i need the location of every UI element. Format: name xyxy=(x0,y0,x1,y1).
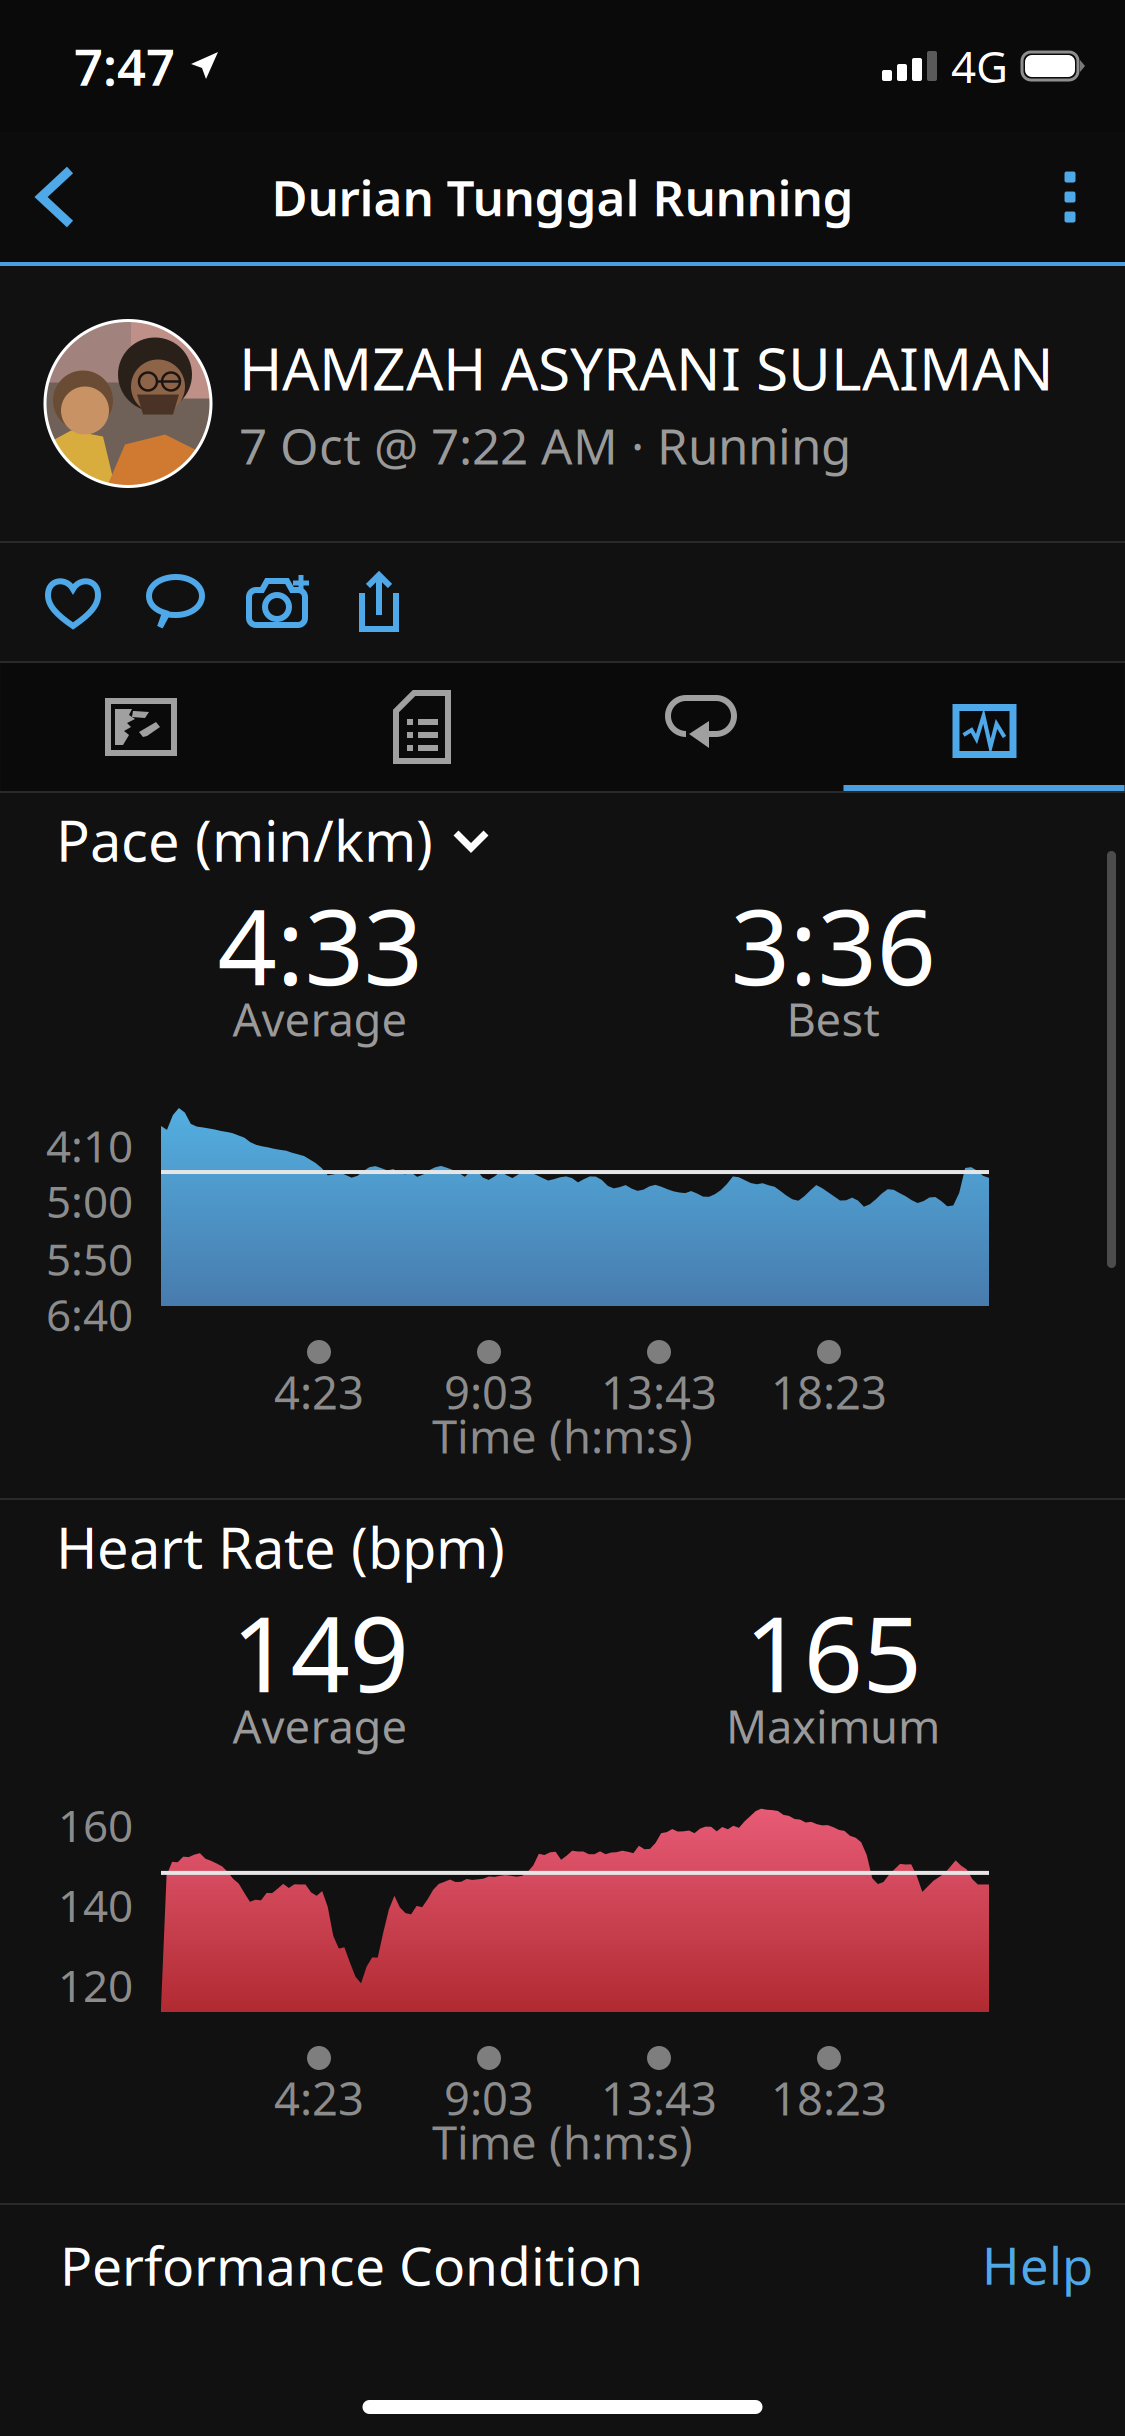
staticText: 149 xyxy=(231,1583,408,1721)
staticText: 13:43 xyxy=(601,1362,717,1422)
button[interactable]: Add photo xyxy=(226,552,328,652)
staticText: 18:23 xyxy=(771,2068,887,2128)
button[interactable]: Charts xyxy=(843,663,1124,791)
staticText: 5:50 xyxy=(46,1229,133,1288)
staticText: Durian Tunggal Running xyxy=(271,164,853,230)
staticText: Best xyxy=(786,989,879,1049)
staticText: 13:43 xyxy=(601,2068,717,2128)
button[interactable]: Details xyxy=(281,663,562,791)
button[interactable]: Share xyxy=(328,552,430,652)
staticText: Help xyxy=(982,2231,1093,2299)
staticText: 160 xyxy=(58,1796,133,1854)
staticText: Average xyxy=(232,1696,407,1756)
staticText: 4:23 xyxy=(274,2068,364,2128)
button[interactable]: Comment xyxy=(124,552,226,652)
staticText: 165 xyxy=(744,1583,921,1721)
staticText: Pace (min/km) xyxy=(56,803,433,877)
staticText: Maximum xyxy=(726,1696,940,1756)
staticText: Heart Rate (bpm) xyxy=(56,1510,505,1584)
staticText: 140 xyxy=(58,1876,133,1934)
staticText: 4:33 xyxy=(217,876,422,1014)
button[interactable]: Back xyxy=(0,142,110,252)
staticText: 3:36 xyxy=(730,876,935,1014)
staticText: 6:40 xyxy=(46,1285,133,1343)
staticText: 9:03 xyxy=(444,2068,534,2128)
staticText: 7:47 xyxy=(74,32,175,100)
button[interactable]: More options xyxy=(1015,142,1125,252)
staticText: 7 Oct @ 7:22 AM · Running xyxy=(239,413,851,478)
staticText: Average xyxy=(232,989,407,1049)
button[interactable]: Like xyxy=(22,552,124,652)
staticText: 4G xyxy=(951,37,1008,95)
staticText: 9:03 xyxy=(444,1362,534,1422)
staticText: Time (h:m:s) xyxy=(432,2112,693,2172)
staticText: 4:10 xyxy=(46,1116,133,1174)
staticText: Performance Condition xyxy=(60,2230,643,2300)
staticText: Time (h:m:s) xyxy=(432,1406,693,1466)
button[interactable]: Performance Condition xyxy=(0,2205,1125,2325)
staticText: 5:00 xyxy=(46,1172,133,1230)
staticText: 4:23 xyxy=(274,1362,364,1422)
staticText: 120 xyxy=(58,1956,133,2014)
button[interactable]: Map xyxy=(0,663,281,791)
staticText: HAMZAH ASYRANI SULAIMAN xyxy=(239,329,1054,407)
staticText: 18:23 xyxy=(771,1362,887,1422)
button[interactable]: Laps xyxy=(562,663,843,791)
